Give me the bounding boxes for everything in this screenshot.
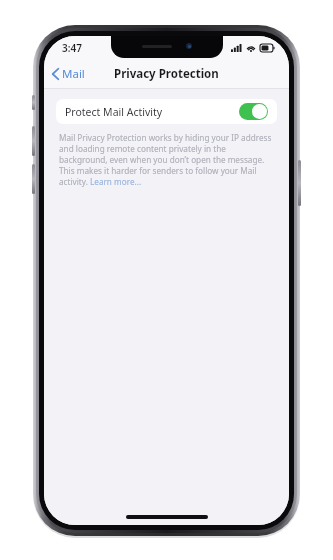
staticText: Privacy Protection xyxy=(114,66,219,82)
staticText: Mail xyxy=(62,66,85,82)
button[interactable]: Mail xyxy=(44,62,93,86)
staticText: Protect Mail Activity xyxy=(65,105,239,119)
button[interactable]: Protect Mail Activity xyxy=(56,99,277,124)
button[interactable]: Protect Mail Activity toggle, on xyxy=(239,103,268,120)
staticText: Mail Privacy Protection works by hiding … xyxy=(59,132,274,187)
staticText: 3:47 xyxy=(62,41,82,55)
